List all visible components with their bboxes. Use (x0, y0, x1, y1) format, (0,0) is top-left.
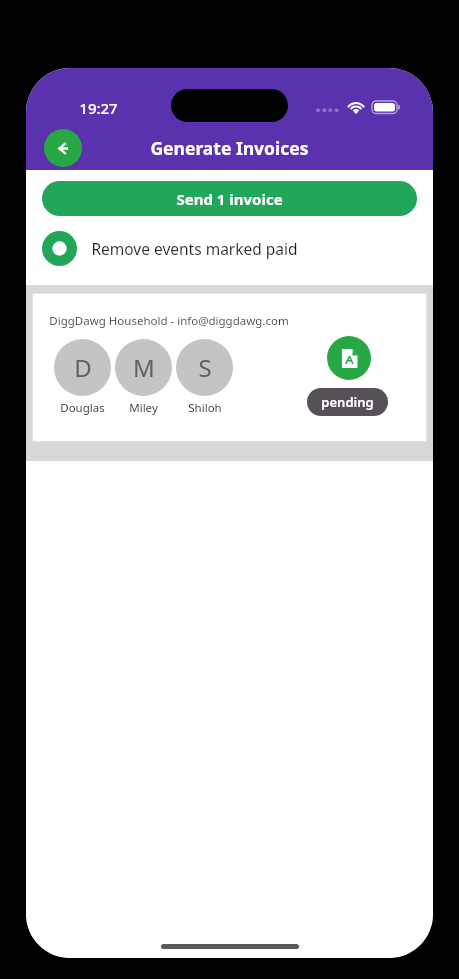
button[interactable]: Send 1 invoice (42, 181, 417, 216)
staticText: Remove events marked paid (91, 238, 298, 259)
staticText: 19:27 (79, 98, 118, 118)
staticText: D (74, 351, 92, 384)
staticText: Generate Invoices (150, 136, 309, 160)
staticText: M (133, 351, 155, 384)
button[interactable]: Download PDF (327, 336, 371, 380)
staticText: pending (321, 393, 374, 411)
button[interactable]: DiggDawg Household - info@diggdawg.com (32, 293, 427, 442)
staticText: Send 1 invoice (176, 189, 283, 209)
staticText: Shiloh (188, 400, 222, 416)
button[interactable]: Remove events marked paid (42, 228, 417, 268)
button[interactable]: Back (44, 129, 82, 167)
staticText: S (198, 351, 212, 384)
staticText: Miley (129, 400, 158, 416)
button[interactable]: pending (307, 388, 388, 416)
staticText: DiggDawg Household - info@diggdawg.com (49, 313, 289, 329)
staticText: Douglas (60, 400, 105, 416)
